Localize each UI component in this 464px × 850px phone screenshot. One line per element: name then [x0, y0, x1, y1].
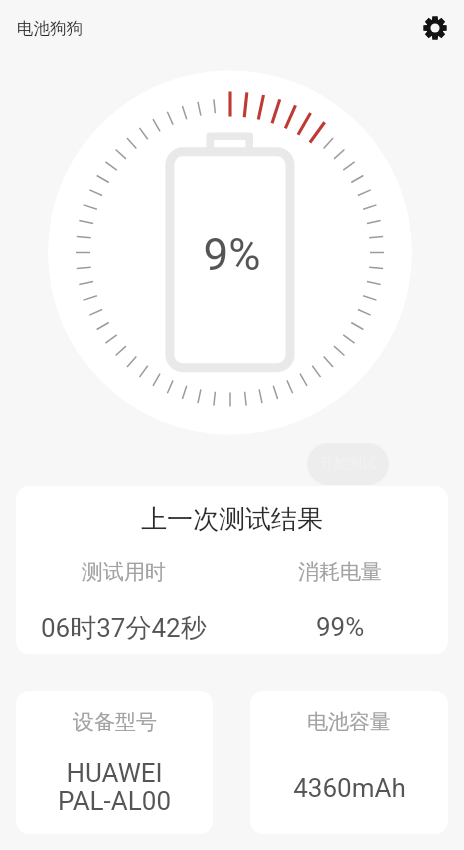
staticText: 消耗电量	[298, 559, 382, 585]
staticText: 4360mAh	[293, 773, 406, 803]
staticText: 电池容量	[307, 709, 391, 735]
staticText: HUAWEI PAL-AL00	[58, 758, 171, 817]
button[interactable]: Settings	[417, 10, 453, 46]
staticText: 电池狗狗	[17, 18, 83, 39]
staticText: 06时37分42秒	[41, 612, 207, 645]
button[interactable]: 设备型号	[16, 691, 213, 834]
staticText: 9%	[0, 229, 464, 281]
button[interactable]: 电池容量	[250, 691, 448, 834]
staticText: 99%	[316, 612, 365, 642]
button[interactable]: 开始测试	[307, 443, 389, 485]
staticText: 设备型号	[73, 709, 157, 735]
staticText: 测试用时	[82, 559, 166, 585]
button[interactable]: 上一次测试结果	[16, 486, 448, 654]
staticText: 上一次测试结果	[16, 503, 448, 536]
